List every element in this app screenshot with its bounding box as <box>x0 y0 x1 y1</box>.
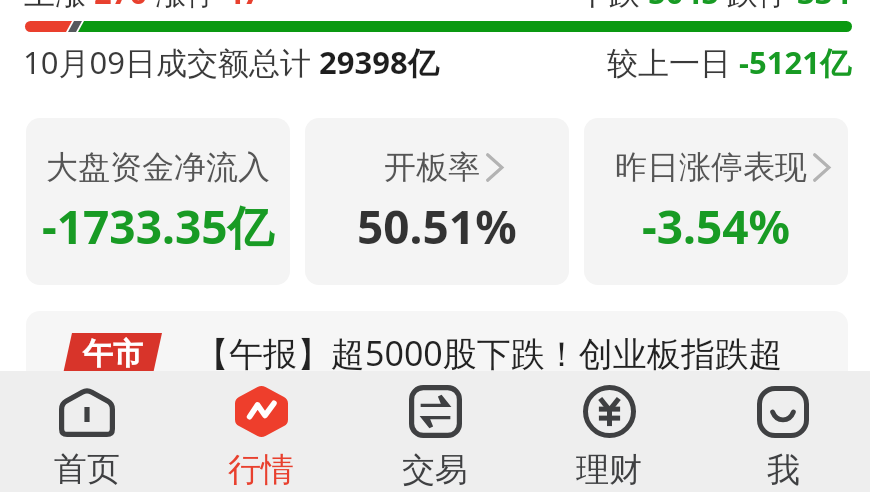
button[interactable]: Trade <box>348 371 522 492</box>
staticText: 首页 <box>54 448 120 490</box>
button[interactable]: 大盘资金净流入 <box>26 118 290 285</box>
staticText: 【午报】超5000股下跌！创业板指跌超 <box>195 330 783 376</box>
button[interactable]: Quotes <box>174 371 348 492</box>
staticText: 下跌 5045 跌停 334 <box>578 0 851 13</box>
staticText: 开板率 <box>384 147 480 187</box>
staticText: 昨日涨停表现 <box>615 147 807 187</box>
button[interactable]: 昨日涨停表现 <box>584 118 848 285</box>
staticText: 我 <box>767 449 800 491</box>
button[interactable]: Finance <box>522 371 696 492</box>
button[interactable]: 午市 <box>26 311 848 401</box>
button[interactable]: Home <box>0 371 174 492</box>
staticText: 50.51% <box>357 195 517 258</box>
staticText: -3.54% <box>642 195 791 258</box>
staticText: 理财 <box>576 449 642 491</box>
button[interactable]: Profile <box>696 371 870 492</box>
staticText: 较上一日 -5121亿 <box>607 41 851 83</box>
staticText: 交易 <box>402 449 468 491</box>
button[interactable]: 开板率 <box>305 118 569 285</box>
staticText: 上涨 270 涨停 47 <box>24 0 261 13</box>
staticText: 10月09日成交额总计 29398亿 <box>23 41 439 83</box>
staticText: 行情 <box>228 449 294 491</box>
staticText: 午市 <box>83 335 143 373</box>
staticText: 大盘资金净流入 <box>46 147 270 187</box>
staticText: -1733.35亿 <box>42 195 274 258</box>
